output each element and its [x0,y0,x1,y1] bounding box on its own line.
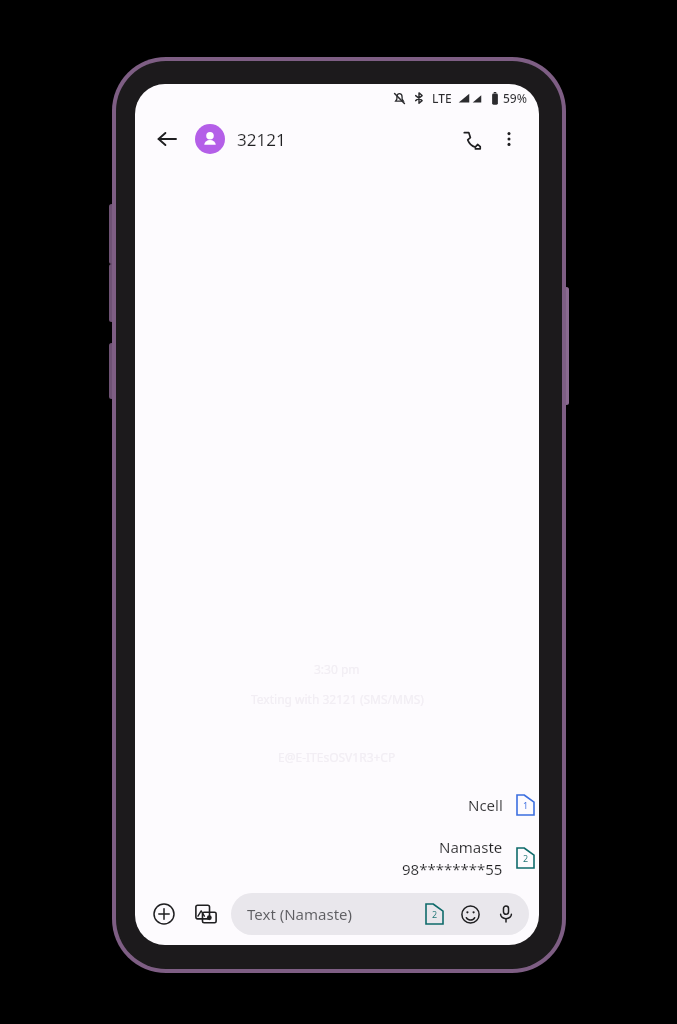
staticText: 59% [503,90,527,106]
staticText: 2 [523,852,529,864]
staticText: Ncell [468,795,503,815]
button[interactable]: More options [491,121,527,157]
button[interactable]: Send photo [187,895,225,933]
staticText: 32121 [237,128,286,151]
staticText: E@E-ITEsOSV1R3+CP [278,749,396,765]
button[interactable]: Emoji [457,901,483,927]
staticText: Texting with 32121 (SMS/MMS) [251,691,424,707]
button[interactable]: Add attachment [145,895,183,933]
staticText: Namaste [439,837,503,857]
staticText: 98********55 [402,859,503,879]
button[interactable]: Text (Namaste) [231,893,529,935]
button[interactable]: Back [147,119,187,159]
staticText: LTE [432,90,452,106]
button[interactable]: Call [451,119,491,159]
staticText: Text (Namaste) [247,904,353,924]
staticText: 3:30 pm [314,661,360,677]
button[interactable]: Voice input [493,901,519,927]
staticText: 1 [523,799,529,811]
button[interactable]: 32121 [195,124,451,154]
staticText: 2 [432,908,438,920]
